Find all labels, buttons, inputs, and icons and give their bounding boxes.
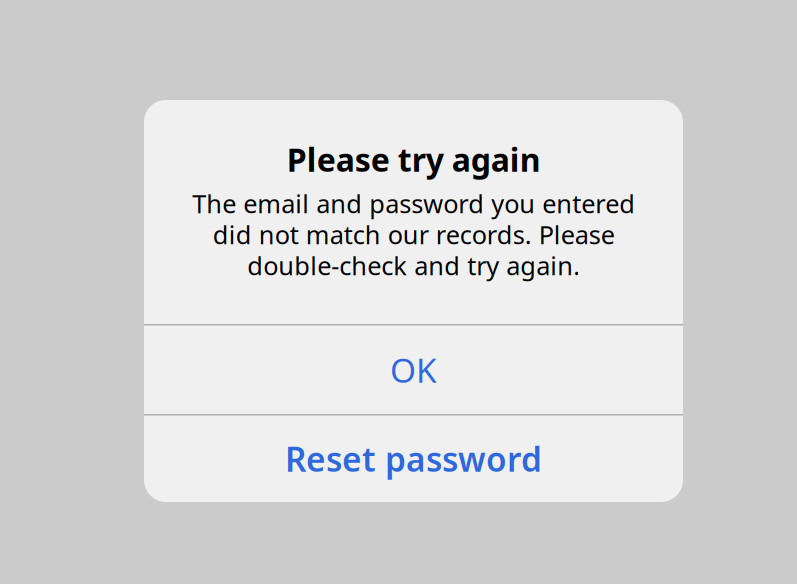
staticText: Please try again: [286, 138, 540, 180]
staticText: The email and password you entered did n…: [192, 186, 635, 282]
button[interactable]: Reset password: [144, 415, 683, 502]
staticText: OK: [390, 348, 437, 392]
button[interactable]: OK: [144, 325, 683, 414]
staticText: Reset password: [285, 437, 542, 481]
